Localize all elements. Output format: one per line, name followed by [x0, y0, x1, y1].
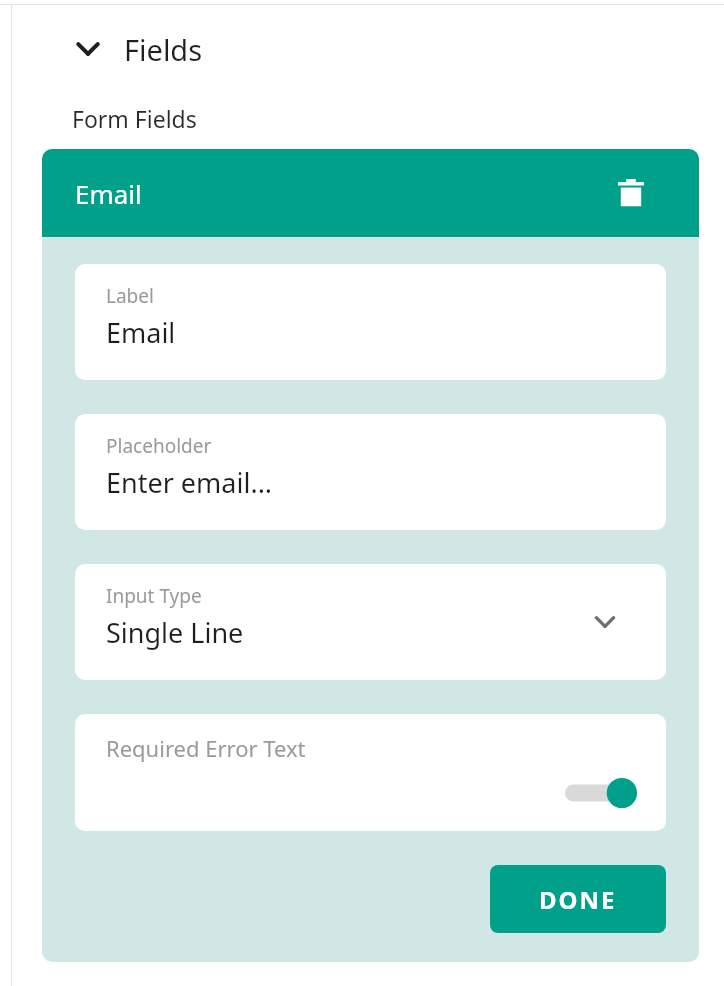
staticText: Input Type — [106, 583, 202, 609]
staticText: Form Fields — [72, 103, 197, 134]
staticText: Placeholder — [106, 433, 212, 459]
button[interactable]: Required error text toggle — [565, 775, 637, 811]
staticText: Email — [106, 314, 176, 351]
staticText: Single Line — [106, 614, 244, 651]
other: Expand input type — [589, 606, 621, 638]
staticText: Label — [106, 283, 154, 309]
button[interactable]: Input Type — [75, 564, 666, 680]
button[interactable]: Placeholder — [75, 414, 666, 530]
other: Collapse Fields — [70, 31, 106, 67]
button[interactable]: DONE — [490, 865, 666, 933]
staticText: Email — [75, 176, 142, 211]
staticText: DONE — [539, 883, 617, 916]
button[interactable]: Required Error Text — [75, 714, 666, 831]
staticText: Fields — [124, 30, 203, 69]
button[interactable]: Delete field — [614, 176, 648, 210]
button[interactable]: Collapse Fields — [70, 25, 203, 73]
button[interactable]: Email — [42, 149, 699, 237]
staticText: Enter email... — [106, 464, 273, 501]
button[interactable]: Label — [75, 264, 666, 380]
staticText: Required Error Text — [106, 733, 306, 763]
